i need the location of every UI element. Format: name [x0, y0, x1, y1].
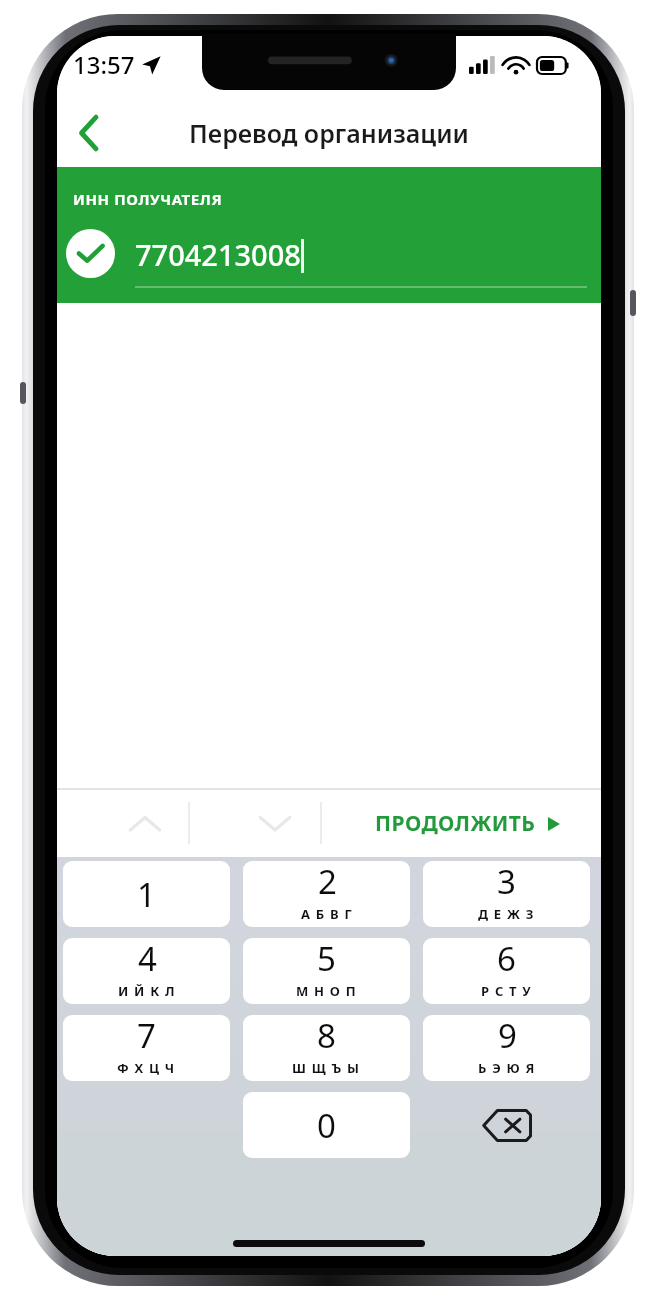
button[interactable]: 9: [423, 1015, 590, 1081]
staticText: 4: [138, 938, 157, 981]
staticText: 7704213008: [135, 235, 301, 274]
staticText: 2: [318, 861, 337, 904]
staticText: А Б В Г: [301, 905, 353, 923]
staticText: 7: [137, 1015, 156, 1058]
button[interactable]: 5: [243, 938, 410, 1004]
button[interactable]: 8: [243, 1015, 410, 1081]
button[interactable]: 6: [423, 938, 590, 1004]
staticText: 9: [498, 1015, 517, 1058]
button[interactable]: Назад: [57, 98, 121, 167]
staticText: 8: [317, 1015, 336, 1058]
button[interactable]: ПРОДОЛЖИТЬ: [375, 790, 560, 857]
button[interactable]: Следующее поле: [233, 790, 317, 857]
button[interactable]: Удалить: [419, 1089, 594, 1161]
button[interactable]: 2: [243, 861, 410, 927]
button[interactable]: 1: [63, 861, 230, 927]
button[interactable]: 7: [63, 1015, 230, 1081]
button[interactable]: 0: [243, 1092, 410, 1158]
button[interactable]: 3: [423, 861, 590, 927]
staticText: Ш Щ Ъ Ы: [292, 1059, 361, 1077]
button[interactable]: 4: [63, 938, 230, 1004]
staticText: 6: [497, 938, 516, 981]
staticText: Ф Х Ц Ч: [117, 1059, 176, 1077]
staticText: М Н О П: [296, 982, 357, 1000]
staticText: Р С Т У: [481, 982, 532, 1000]
staticText: 5: [317, 938, 336, 981]
staticText: И Й К Л: [118, 982, 176, 1000]
staticText: Ь Э Ю Я: [478, 1059, 536, 1077]
button[interactable]: Предыдущее поле: [103, 790, 187, 857]
staticText: Д Е Ж З: [478, 905, 535, 923]
staticText: 1: [137, 872, 156, 917]
staticText: Перевод организации: [57, 116, 601, 150]
staticText: 3: [497, 861, 516, 904]
button[interactable]: ИНН ПОЛУЧАТЕЛЯ: [57, 167, 601, 303]
staticText: ИНН ПОЛУЧАТЕЛЯ: [73, 189, 223, 209]
staticText: 0: [317, 1103, 336, 1148]
staticText: ПРОДОЛЖИТЬ: [375, 809, 536, 838]
staticText: 13:57: [73, 48, 135, 81]
